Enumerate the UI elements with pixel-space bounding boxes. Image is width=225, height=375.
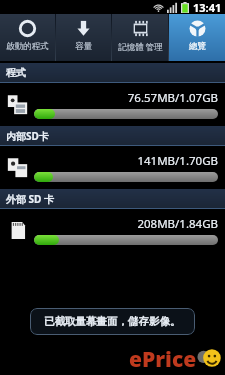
staticText: 208MB/1.84GB [34,216,218,232]
other: Internal SD card [7,157,28,178]
staticText: 程式 [6,66,26,79]
staticText: 13:41 [193,0,222,14]
button[interactable]: 容量 [56,14,111,61]
staticText: 容量 [75,41,92,52]
button[interactable]: External SD card [0,209,225,252]
button[interactable]: 啟動的程式 [0,14,55,61]
button[interactable]: 總覽 [169,14,225,61]
staticText: ePrice [129,345,197,371]
staticText: 76.57MB/1.07GB [34,90,218,106]
button[interactable]: 記憶體 管理 [112,14,168,61]
staticText: 外部 SD 卡 [6,192,55,206]
staticText: 總覽 [189,41,206,52]
staticText: 啟動的程式 [6,41,49,52]
staticText: 已截取量幕畫面，儲存影像。 [44,315,181,328]
button[interactable]: Internal SD card [0,146,225,189]
staticText: 内部SD卡 [6,129,49,143]
staticText: 141MB/1.70GB [34,153,218,169]
other: External SD card [7,220,28,241]
other: Apps storage [7,94,28,115]
button[interactable]: Apps storage [0,83,225,126]
staticText: 記憶體 管理 [118,41,163,53]
